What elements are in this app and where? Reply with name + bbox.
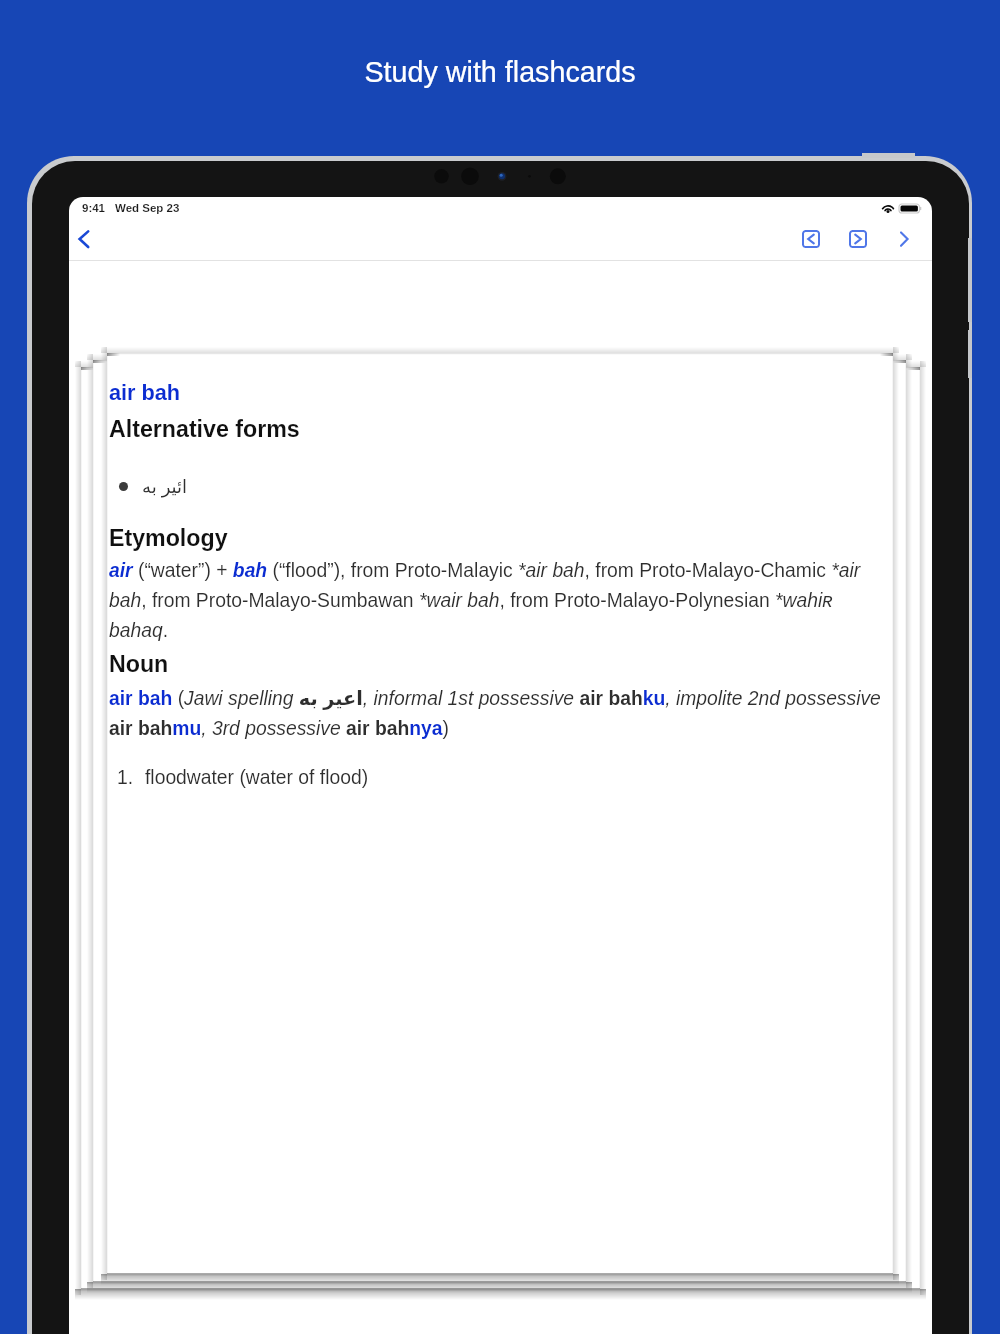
staticText: air bah (Jawi spelling اعير به, informal… — [109, 687, 881, 739]
staticText: Etymology — [109, 525, 228, 551]
staticText: Noun — [109, 651, 169, 677]
button[interactable]: Previous card — [802, 230, 820, 248]
staticText: ائير به — [142, 476, 188, 497]
staticText: Alternative forms — [109, 416, 300, 442]
button[interactable]: Forward — [886, 221, 922, 257]
staticText: 9:41 — [82, 202, 106, 215]
staticText: Wed Sep 23 — [115, 202, 180, 215]
button[interactable]: Next card — [849, 230, 867, 248]
staticText: Study with flashcards — [0, 56, 1000, 88]
staticText: floodwater (water of flood) — [145, 767, 369, 789]
button[interactable]: Back — [69, 217, 105, 253]
staticText: air bah — [109, 380, 181, 404]
button[interactable]: Flip flashcard: air bah — [107, 353, 893, 1274]
staticText: 1. — [117, 767, 134, 789]
staticText: air (“water”) + bah (“flood”), from Prot… — [109, 560, 874, 641]
